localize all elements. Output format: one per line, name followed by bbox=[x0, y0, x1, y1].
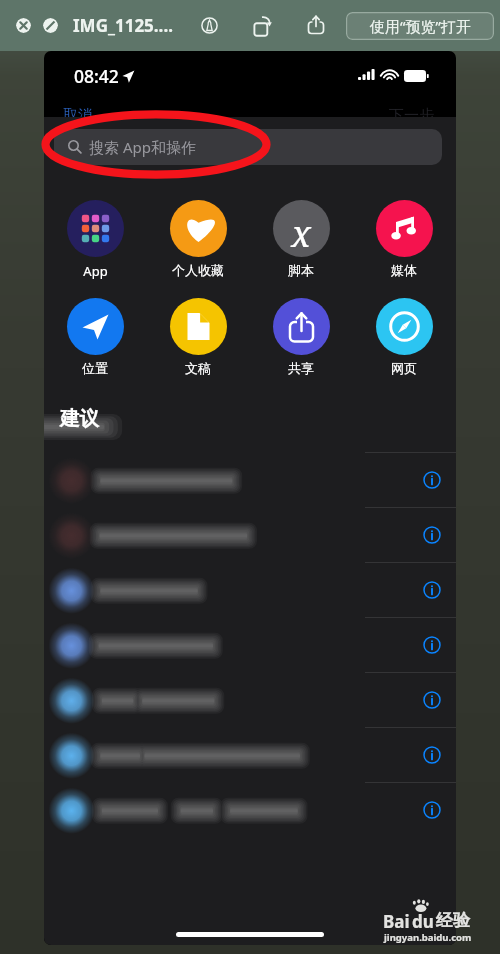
staticText: x bbox=[291, 209, 311, 258]
button[interactable]: Info bbox=[423, 581, 441, 599]
staticText: Bai bbox=[383, 910, 410, 933]
button[interactable]: Info bbox=[423, 636, 441, 654]
staticText: du bbox=[412, 910, 434, 933]
button[interactable]: 个人收藏 bbox=[164, 200, 232, 276]
staticText: IMG_1125.... bbox=[73, 14, 173, 37]
button[interactable]: 网页 bbox=[370, 298, 438, 374]
staticText: App bbox=[83, 262, 108, 280]
staticText: 搜索 App和操作 bbox=[89, 137, 196, 157]
staticText: 媒体 bbox=[391, 262, 417, 278]
button[interactable]: App bbox=[61, 200, 129, 276]
staticText: 08:42 bbox=[74, 64, 119, 88]
button[interactable]: Info bbox=[44, 452, 456, 507]
button[interactable]: x bbox=[267, 200, 335, 276]
button[interactable]: Info bbox=[423, 691, 441, 709]
button[interactable]: Markup bbox=[43, 18, 58, 33]
button[interactable]: Info bbox=[44, 672, 456, 727]
button[interactable]: Info bbox=[44, 562, 456, 617]
button[interactable]: Info bbox=[44, 782, 456, 837]
button[interactable]: Info bbox=[44, 507, 456, 562]
button[interactable]: Info bbox=[423, 746, 441, 764]
button[interactable]: Info bbox=[423, 801, 441, 819]
staticText: 位置 bbox=[82, 360, 108, 376]
staticText: 网页 bbox=[391, 360, 417, 376]
button[interactable]: 文稿 bbox=[164, 298, 232, 374]
button[interactable]: Info bbox=[44, 727, 456, 782]
staticText: 文稿 bbox=[185, 360, 211, 376]
button[interactable]: 搜索 App和操作 bbox=[54, 129, 442, 165]
button[interactable]: Close bbox=[16, 18, 31, 33]
button[interactable]: Share bbox=[306, 14, 326, 34]
button[interactable]: 下一步 bbox=[389, 106, 434, 125]
button[interactable]: Info bbox=[423, 471, 441, 489]
button[interactable]: 媒体 bbox=[370, 200, 438, 276]
staticText: jingyan.baidu.com bbox=[384, 931, 472, 944]
button[interactable]: 使用“预览”打开 bbox=[346, 12, 494, 40]
button[interactable]: Info bbox=[423, 526, 441, 544]
staticText: 共享 bbox=[288, 360, 314, 376]
staticText: 经验 bbox=[436, 910, 470, 931]
button[interactable]: Info bbox=[44, 617, 456, 672]
button[interactable]: Markup tools bbox=[201, 17, 218, 34]
staticText: 建议 bbox=[60, 406, 99, 431]
button[interactable]: 共享 bbox=[267, 298, 335, 374]
staticText: 脚本 bbox=[288, 262, 314, 278]
staticText: 个人收藏 bbox=[172, 262, 224, 278]
button[interactable]: 取消 bbox=[63, 106, 93, 125]
staticText: 使用“预览”打开 bbox=[370, 16, 471, 36]
button[interactable]: Rotate bbox=[251, 15, 273, 37]
button[interactable]: 位置 bbox=[61, 298, 129, 374]
